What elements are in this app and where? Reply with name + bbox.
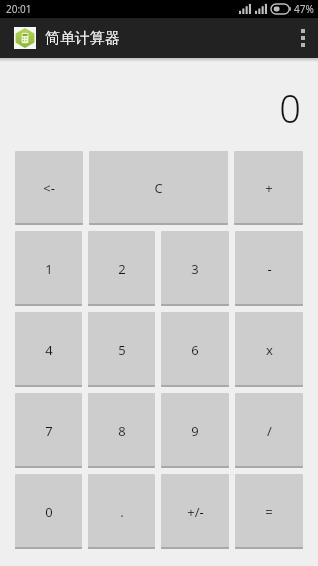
button[interactable]: 2: [88, 231, 155, 306]
staticText: =: [265, 503, 273, 521]
button[interactable]: <-: [15, 151, 83, 225]
button[interactable]: More options: [288, 18, 318, 58]
button[interactable]: 5: [88, 312, 155, 387]
staticText: 简单计算器: [45, 29, 120, 48]
staticText: 0: [45, 503, 53, 521]
staticText: 4: [45, 341, 53, 359]
staticText: 3: [191, 260, 199, 278]
staticText: 2: [118, 260, 126, 278]
staticText: 9: [191, 422, 199, 440]
staticText: C: [154, 179, 163, 197]
staticText: 7: [45, 422, 53, 440]
button[interactable]: /: [235, 393, 303, 468]
button[interactable]: 4: [15, 312, 82, 387]
button[interactable]: 6: [161, 312, 229, 387]
staticText: +/-: [187, 503, 204, 521]
staticText: -: [267, 260, 272, 278]
staticText: /: [267, 422, 272, 440]
button[interactable]: 3: [161, 231, 229, 306]
button[interactable]: 0: [15, 474, 82, 549]
button[interactable]: 8: [88, 393, 155, 468]
staticText: +: [265, 179, 273, 197]
button[interactable]: +/-: [161, 474, 229, 549]
button[interactable]: =: [235, 474, 303, 549]
staticText: 0: [279, 82, 301, 134]
staticText: 5: [118, 341, 126, 359]
staticText: <-: [43, 179, 55, 197]
staticText: .: [120, 503, 124, 521]
staticText: 1: [45, 260, 53, 278]
button[interactable]: x: [235, 312, 303, 387]
staticText: 20:01: [6, 2, 32, 16]
staticText: 47%: [294, 2, 314, 16]
button[interactable]: .: [88, 474, 155, 549]
button[interactable]: 9: [161, 393, 229, 468]
button[interactable]: +: [234, 151, 303, 225]
staticText: x: [266, 341, 273, 359]
staticText: 8: [118, 422, 126, 440]
button[interactable]: C: [89, 151, 228, 225]
button[interactable]: -: [235, 231, 303, 306]
button[interactable]: 1: [15, 231, 82, 306]
button[interactable]: 7: [15, 393, 82, 468]
staticText: 6: [191, 341, 199, 359]
